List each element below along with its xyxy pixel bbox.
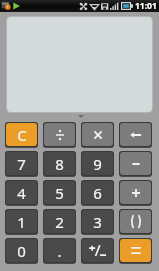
button[interactable]: 6 xyxy=(82,181,113,204)
button[interactable]: 2 xyxy=(44,210,75,233)
button[interactable]: Divide xyxy=(44,123,75,146)
staticText: 2 xyxy=(55,212,64,232)
staticText: . xyxy=(57,241,62,261)
staticText: 7 xyxy=(17,154,26,174)
staticText: 1 xyxy=(17,212,26,232)
button[interactable]: . xyxy=(44,239,75,262)
other: Multiply xyxy=(92,129,104,141)
button[interactable]: Multiply xyxy=(82,123,113,146)
button[interactable]: 8 xyxy=(44,152,75,175)
button[interactable]: 0 xyxy=(6,239,37,262)
button[interactable]: 4 xyxy=(6,181,37,204)
staticText: 8 xyxy=(55,154,64,174)
button[interactable]: Plus minus xyxy=(82,239,113,262)
other: Equals xyxy=(129,245,143,256)
staticText: 4 xyxy=(17,183,26,203)
other: Plus minus xyxy=(88,244,107,258)
other: Minus xyxy=(130,160,142,168)
other: Plus xyxy=(130,187,142,199)
staticText: 6 xyxy=(93,183,102,203)
staticText: 0 xyxy=(17,241,26,261)
staticText: C xyxy=(17,125,27,145)
staticText: 11:01 xyxy=(135,0,157,12)
other: Backspace xyxy=(128,130,144,140)
button[interactable]: 1 xyxy=(6,210,37,233)
button[interactable]: 9 xyxy=(82,152,113,175)
button[interactable]: Plus xyxy=(120,181,151,204)
other: Divide xyxy=(54,129,66,141)
staticText: 5 xyxy=(55,183,64,203)
button[interactable]: C xyxy=(6,123,37,146)
button[interactable]: Minus xyxy=(120,152,151,175)
other: Parentheses xyxy=(129,215,143,228)
button[interactable]: Backspace xyxy=(120,123,151,146)
button[interactable]: 7 xyxy=(6,152,37,175)
staticText: 3 xyxy=(93,212,102,232)
staticText: 9 xyxy=(93,154,102,174)
button[interactable]: Equals xyxy=(120,239,151,262)
button[interactable]: 5 xyxy=(44,181,75,204)
button[interactable]: 3 xyxy=(82,210,113,233)
button[interactable]: Parentheses xyxy=(120,210,151,233)
